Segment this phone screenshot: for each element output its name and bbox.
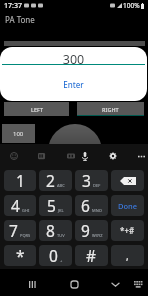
button[interactable]: 2 — [39, 170, 72, 191]
staticText: # — [86, 245, 97, 266]
staticText: *+# — [120, 225, 135, 236]
button[interactable]: More options — [134, 149, 148, 163]
button[interactable]: 7 — [4, 220, 36, 241]
staticText: WXYZ — [92, 233, 103, 238]
button[interactable]: # — [75, 245, 108, 266]
button[interactable]: Voice input — [78, 149, 92, 163]
staticText: 300 — [0, 51, 147, 68]
staticText: PA Tone — [5, 14, 35, 25]
button[interactable]: 3 — [75, 170, 108, 191]
staticText: 9 — [81, 220, 90, 241]
staticText: 100% — [123, 1, 140, 10]
staticText: MNO — [92, 208, 102, 213]
button[interactable] — [111, 170, 144, 191]
staticText: 6 — [81, 195, 90, 216]
staticText: 17:37 — [4, 1, 22, 11]
staticText: DEF — [93, 183, 101, 188]
button[interactable]: 6 — [75, 195, 108, 216]
staticText: 5 — [47, 195, 56, 216]
button[interactable]: 100 — [2, 124, 35, 143]
button[interactable]: Recent apps — [24, 276, 40, 292]
staticText: , — [126, 249, 129, 263]
staticText: 7 — [9, 220, 18, 241]
staticText: 2 — [46, 170, 55, 191]
button[interactable]: RIGHT — [77, 102, 144, 116]
button[interactable]: Enter — [0, 79, 147, 90]
staticText: 8 — [46, 220, 55, 241]
button[interactable]: 8 — [39, 220, 72, 241]
button[interactable]: Settings — [106, 149, 120, 163]
staticText: 3 — [82, 170, 91, 191]
staticText: PQRS — [20, 233, 31, 238]
button[interactable]: LEFT — [4, 102, 69, 116]
button[interactable]: Switch keyboard — [130, 276, 146, 292]
staticText: RIGHT — [102, 106, 119, 113]
staticText: * — [16, 245, 25, 266]
staticText: ABC — [57, 183, 65, 188]
staticText: 1 — [16, 170, 25, 191]
button[interactable]: * — [4, 245, 36, 266]
button[interactable]: , — [111, 245, 144, 266]
staticText: TUV — [57, 233, 65, 238]
staticText: Done — [118, 201, 138, 211]
button[interactable]: 0 — [39, 245, 72, 266]
button[interactable]: 4 — [4, 195, 36, 216]
button[interactable]: *+# — [111, 220, 144, 241]
button[interactable]: 5 — [39, 195, 72, 216]
button[interactable]: Emoji — [7, 149, 21, 163]
button[interactable]: Stickers — [64, 149, 78, 163]
button[interactable]: Done — [111, 195, 144, 216]
staticText: LEFT — [31, 106, 43, 113]
button[interactable]: Hide keyboard — [107, 276, 123, 292]
staticText: GHI — [22, 208, 30, 213]
staticText: + — [60, 258, 63, 263]
staticText: 0 — [49, 245, 58, 266]
staticText: JKL — [58, 208, 64, 213]
staticText: 100 — [13, 130, 24, 138]
button[interactable]: 9 — [75, 220, 108, 241]
button[interactable]: GIF — [35, 149, 49, 163]
staticText: 4 — [11, 195, 20, 216]
button[interactable]: Home — [66, 276, 82, 292]
button[interactable]: 1 — [4, 170, 36, 191]
